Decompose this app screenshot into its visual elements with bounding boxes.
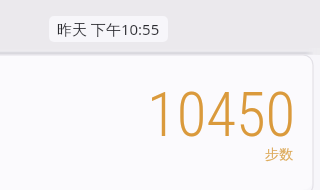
button[interactable]: 10450 [0,55,313,190]
staticText: 昨天 下午10:55 [57,19,160,39]
staticText: 步数 [265,146,293,164]
staticText: 10450 [147,79,296,150]
button[interactable]: 昨天 下午10:55 [49,16,168,42]
